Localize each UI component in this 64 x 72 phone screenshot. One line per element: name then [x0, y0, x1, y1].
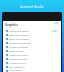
staticText: Android Studio — [0, 4, 64, 9]
button[interactable]: Images and bitmaps — [3, 41, 61, 45]
staticText: Compose graphics — [9, 30, 30, 33]
staticText: Graphics — [5, 23, 19, 27]
button[interactable]: Vector drawables — [3, 57, 61, 61]
staticText: Animated icons — [9, 62, 26, 65]
button[interactable]: Layer effects — [3, 69, 61, 72]
staticText: Text rendering — [9, 66, 25, 69]
button[interactable]: Draw with Canvas — [3, 33, 61, 37]
staticText: Brush and shaders — [9, 38, 30, 41]
staticText: Images and bitmaps — [9, 42, 32, 45]
staticText: Vector drawables — [9, 58, 28, 61]
button[interactable]: Blend modes — [3, 49, 61, 53]
staticText: Draw with Canvas — [9, 34, 29, 37]
staticText: Custom modifiers — [9, 46, 29, 49]
button[interactable]: Search — [54, 22, 59, 24]
button[interactable]: Animated icons — [3, 61, 61, 65]
button[interactable]: Text rendering — [3, 65, 61, 69]
staticText: Blend modes — [9, 50, 24, 53]
button[interactable]: Compose graphics — [3, 29, 61, 33]
staticText: Shapes and paths — [9, 54, 29, 57]
staticText: Layer effects — [9, 69, 23, 72]
button[interactable]: Shapes and paths — [3, 53, 61, 57]
button[interactable]: Custom modifiers — [3, 45, 61, 49]
button[interactable]: Brush and shaders — [3, 37, 61, 41]
